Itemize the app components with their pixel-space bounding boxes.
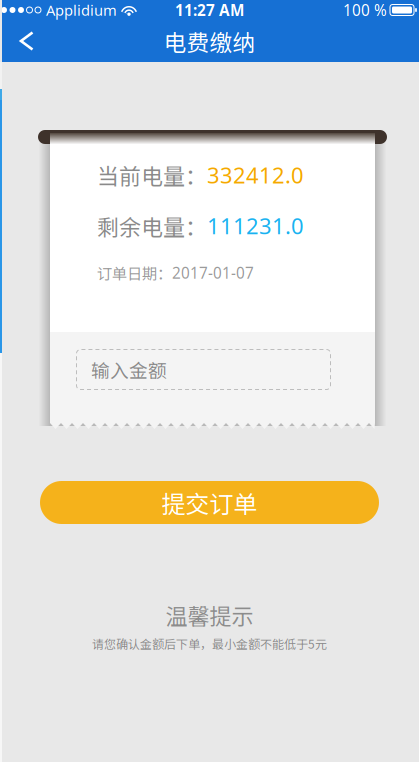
staticText: 当前电量： <box>97 159 207 191</box>
staticText: 提交订单 <box>161 485 257 520</box>
button[interactable]: 提交订单 <box>0 481 419 524</box>
staticText: 电费缴纳 <box>163 25 255 57</box>
staticText: Applidium <box>46 0 117 20</box>
staticText: 请您确认金额后下单，最小金额不能低于5元 <box>92 635 327 652</box>
staticText: 332412.0 <box>207 160 304 190</box>
staticText: 2017-01-07 <box>172 262 254 283</box>
staticText: 剩余电量： <box>97 210 207 242</box>
staticText: 输入金额 <box>91 356 167 383</box>
staticText: 11:27 AM <box>175 0 244 20</box>
button[interactable]: Back <box>0 20 49 61</box>
staticText: 111231.0 <box>207 211 304 241</box>
staticText: 100 % <box>343 0 387 20</box>
staticText: 订单日期： <box>97 262 172 284</box>
staticText: 温馨提示 <box>165 599 253 631</box>
